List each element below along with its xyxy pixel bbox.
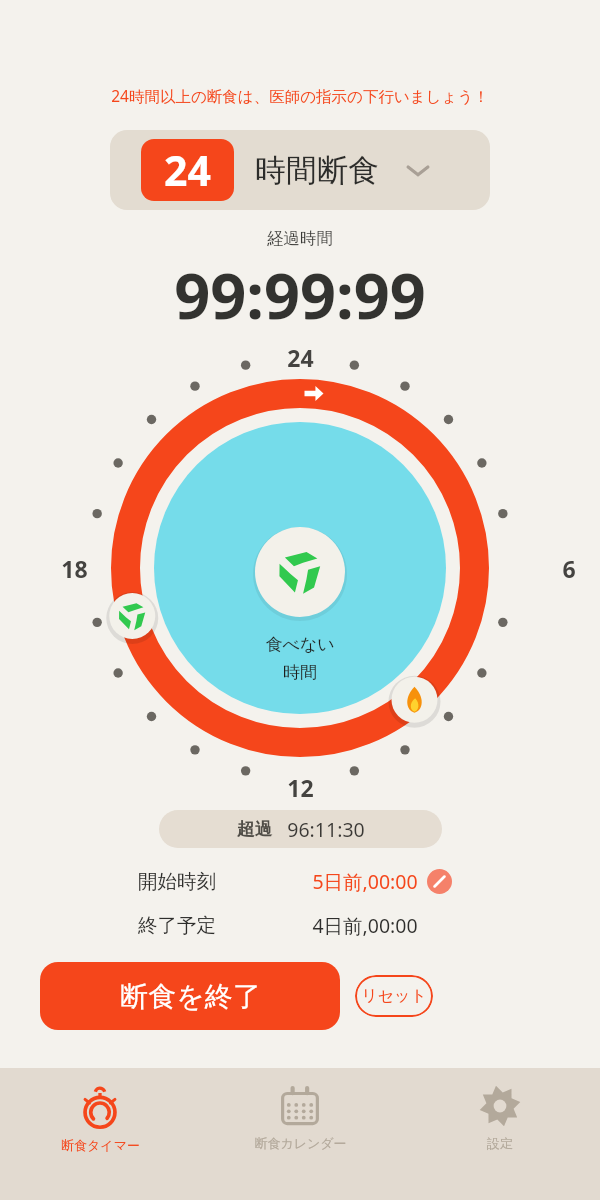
staticText: 4日前,00:00 xyxy=(312,912,418,939)
staticText: 時間 xyxy=(283,662,317,683)
staticText: リセット xyxy=(361,986,427,1006)
staticText: 96:11:30 xyxy=(287,816,365,843)
staticText: 5日前,00:00 xyxy=(312,868,418,895)
staticText: 6 xyxy=(562,553,576,584)
staticText: 断食カレンダー xyxy=(254,1135,347,1151)
staticText: 24 xyxy=(287,342,314,373)
staticText: 開始時刻 xyxy=(138,869,216,894)
staticText: 時間断食 xyxy=(255,151,379,190)
button[interactable]: リセット xyxy=(355,975,433,1017)
staticText: 経過時間 xyxy=(267,228,333,249)
button[interactable]: 断食を終了 xyxy=(40,962,340,1030)
staticText: 食べない xyxy=(265,634,335,655)
button[interactable]: 24 xyxy=(110,130,490,210)
staticText: 断食タイマー xyxy=(61,1137,140,1153)
staticText: 超過 xyxy=(237,818,272,840)
button[interactable]: 断食タイマー xyxy=(0,1068,200,1200)
staticText: 終了予定 xyxy=(138,913,216,938)
button[interactable]: 開始時刻を編集 xyxy=(427,869,452,894)
staticText: 24時間以上の断食は、医師の指示の下行いましょう！ xyxy=(111,85,489,106)
staticText: 断食を終了 xyxy=(120,979,261,1014)
button[interactable]: 断食カレンダー xyxy=(200,1068,400,1200)
staticText: 設定 xyxy=(487,1135,513,1151)
button[interactable]: 設定 xyxy=(400,1068,600,1200)
staticText: 18 xyxy=(61,553,88,584)
staticText: 99:99:99 xyxy=(174,252,426,338)
staticText: 24 xyxy=(164,142,211,198)
staticText: 12 xyxy=(287,772,314,803)
